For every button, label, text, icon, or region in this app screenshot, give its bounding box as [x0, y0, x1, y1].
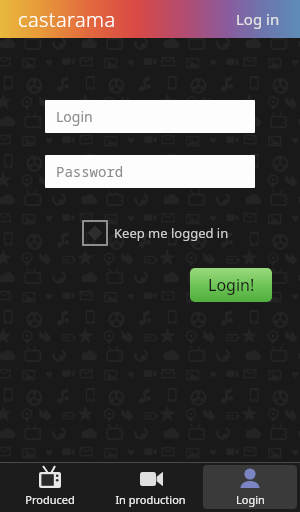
- staticText: Password: [56, 162, 124, 181]
- staticText: Keep me logged in: [114, 224, 229, 242]
- staticText: Login: [56, 107, 93, 126]
- button[interactable]: Login: [45, 100, 255, 133]
- button[interactable]: Login!: [190, 268, 272, 302]
- button[interactable]: Keep me logged in: [83, 220, 229, 246]
- staticText: Login!: [208, 274, 255, 296]
- staticText: Login: [236, 492, 265, 507]
- button[interactable]: Produced: [3, 465, 97, 509]
- button[interactable]: In production: [103, 465, 197, 509]
- staticText: Log in: [236, 9, 280, 29]
- staticText: castarama: [18, 6, 116, 33]
- staticText: Produced: [25, 492, 75, 507]
- button[interactable]: Password: [45, 155, 255, 188]
- staticText: In production: [115, 492, 186, 507]
- button[interactable]: Login: [203, 465, 297, 509]
- button[interactable]: Log in: [216, 1, 300, 37]
